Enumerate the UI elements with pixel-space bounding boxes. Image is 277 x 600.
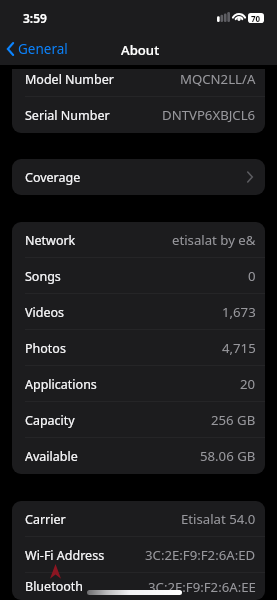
other: Wi-Fi [232, 12, 246, 21]
staticText: 70 [251, 13, 261, 23]
staticText: 4,715 [222, 339, 256, 357]
other: Cellular signal [217, 12, 230, 22]
staticText: Songs [25, 268, 61, 285]
button[interactable]: Carrier [12, 501, 265, 537]
staticText: Serial Number [25, 107, 110, 124]
button[interactable]: Network [12, 222, 265, 258]
staticText: 256 GB [211, 411, 256, 429]
staticText: Photos [25, 340, 66, 357]
staticText: 3C:2E:F9:F2:6A:EE [148, 578, 256, 596]
staticText: 58.06 GB [200, 447, 256, 465]
staticText: Applications [25, 376, 97, 393]
staticText: 1,673 [222, 303, 256, 321]
button[interactable]: Songs [12, 258, 265, 294]
button[interactable]: Serial Number [12, 97, 265, 133]
button[interactable]: Applications [12, 366, 265, 402]
other: Open Coverage [247, 172, 253, 182]
staticText: Carrier [25, 511, 66, 528]
button[interactable]: Wi-Fi Address [12, 537, 265, 573]
staticText: Capacity [25, 412, 75, 429]
staticText: etisalat by e& [172, 231, 256, 249]
staticText: Videos [25, 304, 65, 321]
staticText: Wi-Fi Address [25, 547, 105, 564]
staticText: Coverage [25, 169, 81, 186]
button[interactable]: Capacity [12, 402, 265, 438]
staticText: 20 [240, 375, 256, 393]
button[interactable]: General [5, 40, 70, 58]
staticText: Network [25, 232, 76, 249]
button[interactable]: Available [12, 438, 265, 474]
staticText: 0 [248, 267, 256, 285]
other: Battery 70 percent [248, 13, 264, 23]
staticText: General [18, 40, 68, 58]
button[interactable]: Videos [12, 294, 265, 330]
staticText: About [121, 41, 160, 59]
staticText: 3:59 [23, 10, 47, 26]
staticText: Available [25, 448, 78, 465]
button[interactable]: Coverage [12, 159, 265, 195]
staticText: Model Number [25, 71, 114, 88]
staticText: DNTVP6XBJCL6 [162, 106, 256, 124]
staticText: Bluetooth [25, 578, 84, 595]
button[interactable]: Bluetooth [12, 573, 265, 600]
staticText: Etisalat 54.0 [181, 510, 256, 528]
button[interactable]: Photos [12, 330, 265, 366]
button[interactable]: Model Number [12, 69, 265, 97]
staticText: MQCN2LL/A [180, 70, 256, 88]
staticText: 3C:2E:F9:F2:6A:ED [145, 546, 256, 564]
